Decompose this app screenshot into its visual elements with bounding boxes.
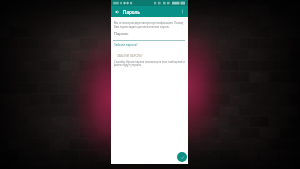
button[interactable]: More options [177,6,188,17]
staticText: ЗАБЫЛИ ПАРОЛЬ? [117,54,143,58]
button[interactable]: Save password [177,152,187,162]
staticText: Пароль [114,31,129,36]
button[interactable]: Back [111,6,122,17]
staticText: Мы используем двухэтапную аутентификацию… [114,21,184,25]
staticText: Пароль [123,9,140,15]
button[interactable]: Забыли пароль? [114,43,138,47]
staticText: файлы будут утеряны. [114,63,142,67]
staticText: Вам нужно задать дополнительный пароль. [114,25,170,29]
staticText: Способы сброса пароля описаны для этих с… [114,60,185,64]
